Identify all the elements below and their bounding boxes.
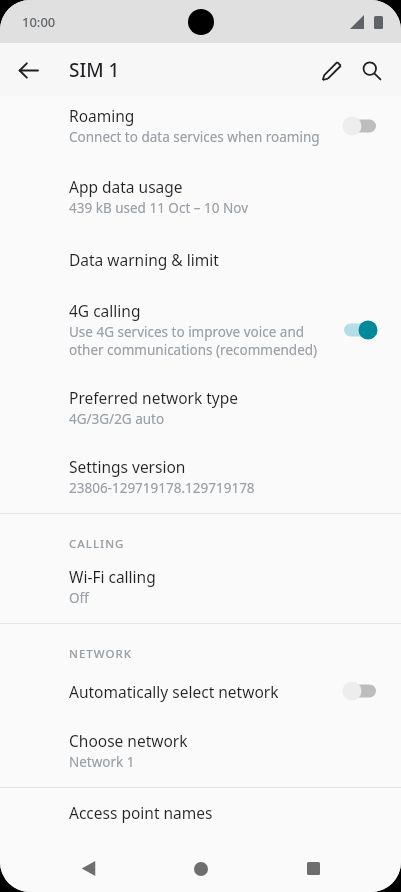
button[interactable]: Recents <box>289 845 337 892</box>
staticText: Settings version <box>69 456 186 477</box>
staticText: NETWORK <box>69 646 133 662</box>
staticText: Access point names <box>69 802 213 823</box>
button[interactable]: Back <box>64 845 112 892</box>
staticText: Preferred network type <box>69 387 239 408</box>
staticText: Choose network <box>69 730 188 751</box>
button[interactable]: Automatically select network <box>0 672 401 718</box>
button[interactable]: Roaming <box>0 97 401 160</box>
staticText: App data usage <box>69 176 183 197</box>
staticText: Off <box>69 589 89 607</box>
staticText: Network 1 <box>69 753 135 771</box>
staticText: Wi-Fi calling <box>69 566 156 587</box>
staticText: 10:00 <box>22 13 56 31</box>
button[interactable]: Settings version <box>0 442 401 513</box>
button[interactable]: Data warning & limit <box>0 233 401 286</box>
button[interactable]: 4G calling <box>0 286 401 373</box>
button[interactable]: Access point names <box>0 788 401 837</box>
staticText: Automatically select network <box>69 681 279 702</box>
button[interactable]: Preferred network type <box>0 373 401 442</box>
button[interactable]: Wi-Fi calling <box>0 562 401 623</box>
staticText: SIM 1 <box>69 57 120 83</box>
staticText: CALLING <box>69 536 125 552</box>
button[interactable]: Edit <box>311 50 351 90</box>
staticText: Use 4G services to improve voice and oth… <box>69 323 318 359</box>
button[interactable]: Back <box>10 52 46 88</box>
staticText: Data warning & limit <box>69 249 219 270</box>
button[interactable]: Choose network <box>0 718 401 787</box>
staticText: Roaming <box>69 105 135 126</box>
button[interactable] <box>337 113 383 139</box>
button[interactable]: App data usage <box>0 160 401 233</box>
staticText: 4G calling <box>69 300 141 321</box>
button[interactable]: Search <box>351 50 391 90</box>
staticText: Connect to data services when roaming <box>69 128 320 146</box>
button[interactable] <box>337 317 383 343</box>
button[interactable]: Home <box>177 845 225 892</box>
button[interactable] <box>337 678 383 704</box>
staticText: 4G/3G/2G auto <box>69 410 165 428</box>
staticText: 23806-129719178.129719178 <box>69 479 255 497</box>
staticText: 439 kB used 11 Oct – 10 Nov <box>69 199 248 217</box>
